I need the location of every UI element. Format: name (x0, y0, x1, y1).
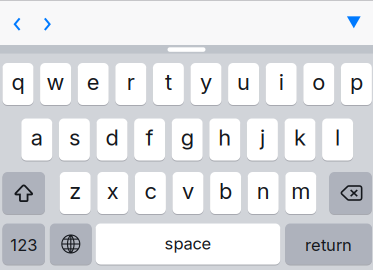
button[interactable]: Hide keyboard (337, 5, 371, 39)
staticText: x (107, 178, 119, 204)
staticText: return (305, 235, 352, 255)
button[interactable]: Next field (30, 7, 64, 41)
staticText: r (127, 69, 135, 95)
button[interactable]: i (266, 63, 297, 105)
staticText: a (31, 124, 43, 151)
button[interactable]: space (96, 223, 280, 264)
button[interactable]: y (190, 63, 221, 105)
staticText: h (218, 124, 231, 151)
button[interactable]: g (172, 118, 203, 160)
staticText: d (105, 124, 118, 151)
button[interactable]: Next keyboard (50, 223, 92, 264)
button[interactable]: a (21, 118, 52, 160)
staticText: i (279, 69, 284, 95)
button[interactable]: o (303, 63, 334, 105)
button[interactable]: u (228, 63, 259, 105)
staticText: v (182, 178, 194, 204)
staticText: y (200, 69, 212, 95)
button[interactable]: return (285, 223, 372, 264)
button[interactable]: w (40, 63, 71, 105)
button[interactable]: v (172, 172, 203, 214)
staticText: t (165, 69, 172, 95)
button[interactable]: m (285, 172, 316, 214)
staticText: q (11, 69, 24, 95)
staticText: o (312, 69, 325, 95)
button[interactable]: p (341, 63, 372, 105)
staticText: s (69, 124, 80, 151)
staticText: space (164, 233, 211, 253)
staticText: u (237, 69, 250, 95)
button[interactable]: e (78, 63, 109, 105)
button[interactable]: h (209, 118, 240, 160)
button[interactable]: x (97, 172, 128, 214)
staticText: k (294, 124, 306, 151)
button[interactable]: Shift (2, 172, 45, 214)
button[interactable]: d (96, 118, 127, 160)
button[interactable]: b (210, 172, 241, 214)
button[interactable]: n (248, 172, 279, 214)
button[interactable]: l (322, 118, 353, 160)
button[interactable]: k (284, 118, 315, 160)
staticText: c (144, 178, 156, 204)
button[interactable]: f (134, 118, 165, 160)
staticText: p (350, 69, 363, 95)
button[interactable]: q (2, 63, 33, 105)
staticText: n (257, 178, 270, 204)
staticText: e (87, 69, 100, 95)
staticText: f (146, 124, 154, 151)
staticText: m (291, 178, 310, 204)
button[interactable]: r (115, 63, 146, 105)
staticText: j (260, 124, 265, 151)
staticText: l (335, 124, 340, 151)
button[interactable]: j (247, 118, 278, 160)
button[interactable]: Numbers (2, 223, 45, 264)
button[interactable]: z (60, 172, 91, 214)
button[interactable]: s (59, 118, 90, 160)
staticText: 123 (10, 235, 37, 255)
button[interactable]: c (135, 172, 166, 214)
staticText: z (69, 178, 81, 204)
staticText: b (219, 178, 232, 204)
button[interactable]: Delete (329, 172, 372, 214)
button[interactable]: Previous field (0, 7, 34, 41)
button[interactable]: t (153, 63, 184, 105)
staticText: g (181, 124, 194, 151)
staticText: w (47, 69, 65, 95)
